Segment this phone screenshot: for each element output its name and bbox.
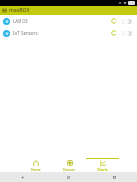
button[interactable]: Recent apps xyxy=(91,172,137,182)
button[interactable]: Devices xyxy=(53,158,86,172)
button[interactable]: Toggle device xyxy=(120,28,134,39)
button[interactable]: Home xyxy=(19,158,53,172)
button[interactable]: LAB 03 xyxy=(0,15,137,27)
button[interactable]: Charts xyxy=(86,158,119,172)
staticText: Home xyxy=(31,167,41,172)
button[interactable]: Open navigation drawer xyxy=(0,6,9,15)
button[interactable]: Refresh xyxy=(109,16,119,26)
staticText: LAB 03 xyxy=(13,18,109,24)
staticText: Charts xyxy=(97,167,108,172)
staticText: IoT Sensors xyxy=(13,30,109,36)
button[interactable]: Refresh xyxy=(109,28,119,38)
button[interactable]: Back xyxy=(0,172,45,182)
button[interactable]: Home xyxy=(45,172,91,182)
staticText: maxBOX xyxy=(9,7,30,14)
button[interactable]: Toggle device xyxy=(120,16,134,27)
button[interactable]: IoT Sensors xyxy=(0,27,137,39)
staticText: Devices xyxy=(63,167,76,172)
